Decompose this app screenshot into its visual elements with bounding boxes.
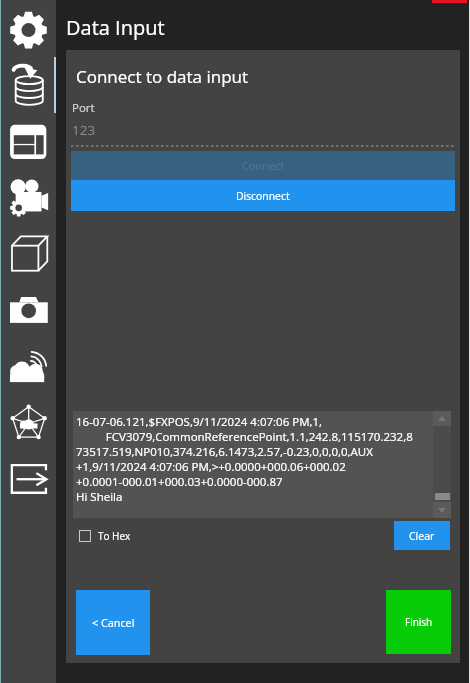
button[interactable]: Photo (0, 282, 56, 338)
button[interactable]: 3D model (0, 226, 56, 282)
staticText: To Hex (98, 529, 131, 543)
button[interactable]: Network (0, 395, 56, 451)
staticText: Data Input (66, 14, 165, 41)
staticText: Port (72, 100, 95, 116)
staticText: Finish (405, 615, 433, 629)
button[interactable]: Camera settings (0, 170, 56, 226)
button[interactable]: Settings (0, 2, 56, 58)
button[interactable]: < Cancel (76, 590, 150, 655)
staticText: 123 (72, 121, 96, 139)
staticText: Hi Sheila (76, 489, 123, 504)
button[interactable]: Finish (386, 590, 451, 654)
button[interactable]: To Hex (79, 529, 131, 543)
staticText: FCV3079,CommonReferencePoint,1.1,242.8,1… (76, 429, 413, 444)
button[interactable]: Dashboard (0, 114, 56, 170)
staticText: Clear (409, 529, 435, 543)
staticText: < Cancel (92, 615, 135, 630)
staticText: Connect (242, 158, 285, 173)
staticText: 16-07-06.121,$FXPOS,9/11/2024 4:07:06 PM… (76, 414, 323, 429)
button[interactable]: Cloud upload (0, 340, 56, 396)
staticText: +0.0001-000.01+000.03+0.0000-000.87 (76, 474, 283, 489)
staticText: Disconnect (236, 189, 290, 203)
button[interactable]: Disconnect (71, 180, 455, 211)
staticText: +1,9/11/2024 4:07:06 PM,>+0.0000+000.06+… (76, 459, 346, 474)
staticText: Connect to data input (76, 65, 249, 88)
button[interactable]: Clear (394, 521, 450, 550)
button[interactable]: Exit (0, 451, 56, 507)
button[interactable]: Data input (0, 58, 56, 114)
staticText: 73517.519,NP010,374.216,6.1473,2.57,-0.2… (76, 444, 373, 459)
